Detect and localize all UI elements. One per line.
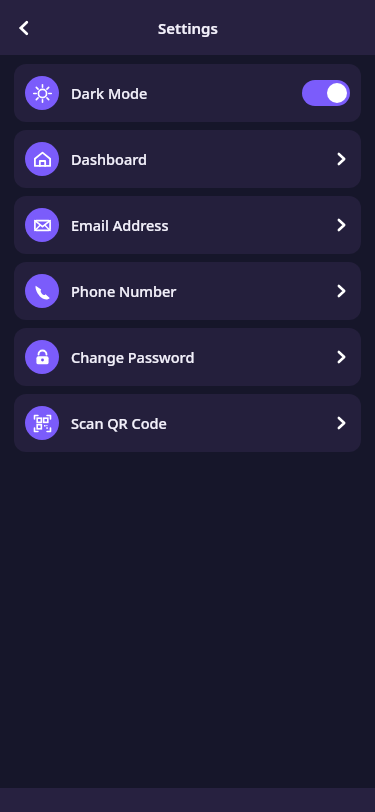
button[interactable]: Dashboard [14,130,361,188]
button[interactable]: Change Password [14,328,361,386]
staticText: Dark Mode [71,83,148,103]
button[interactable]: Email Address [14,196,361,254]
button[interactable]: Phone Number [14,262,361,320]
staticText: Email Address [71,215,169,235]
staticText: Scan QR Code [71,413,167,433]
button[interactable]: Dark Mode [14,64,361,122]
button[interactable]: Scan QR Code [14,394,361,452]
button[interactable]: Back [4,8,44,48]
staticText: Dashboard [71,149,148,169]
button[interactable]: Dark Mode toggle [302,80,350,106]
staticText: Change Password [71,347,195,367]
staticText: Settings [158,18,218,38]
staticText: Phone Number [71,281,177,301]
